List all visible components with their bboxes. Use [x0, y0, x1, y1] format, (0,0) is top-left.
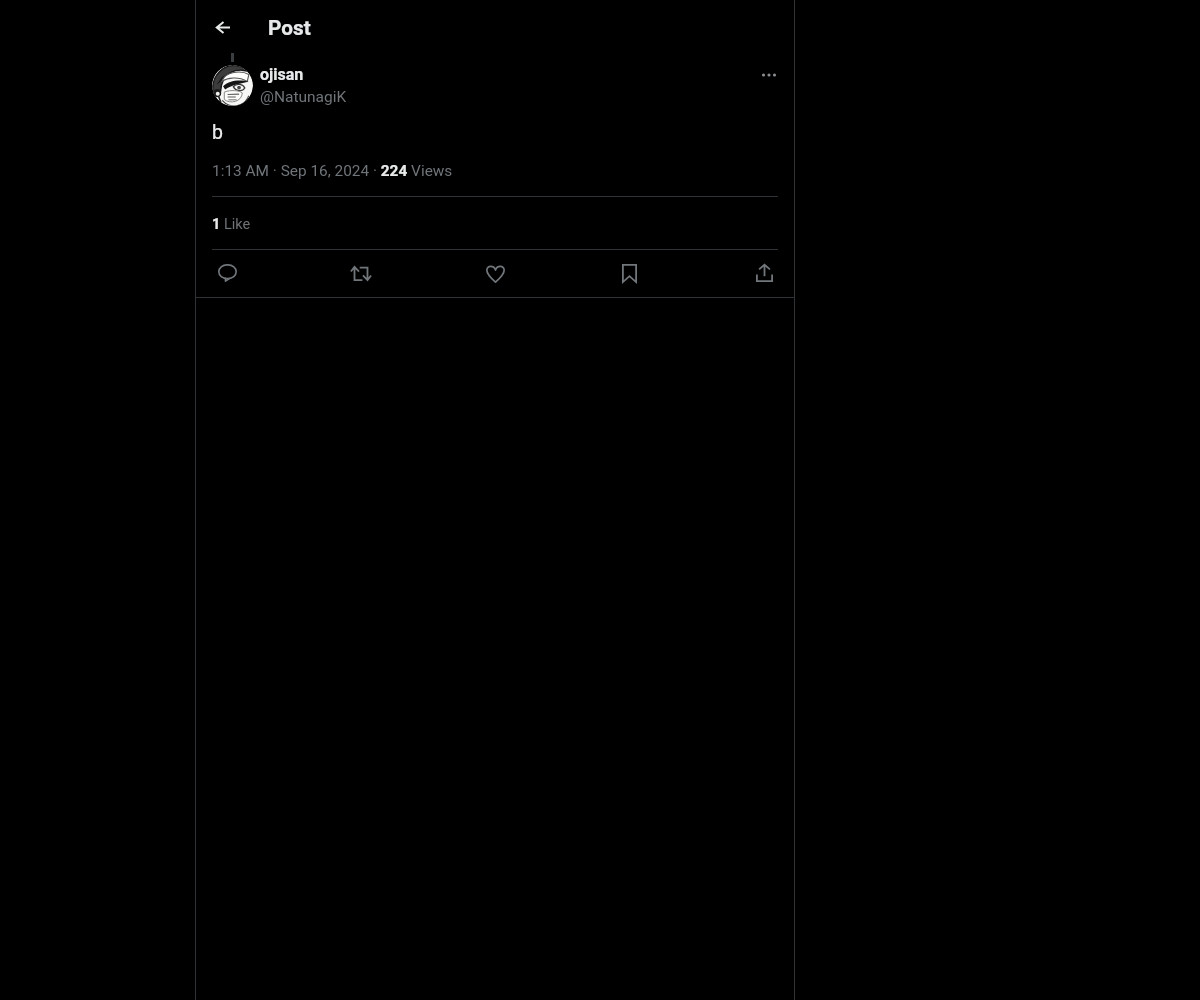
button[interactable]: Repost	[345, 257, 377, 289]
staticText: b	[212, 121, 223, 144]
staticText: 1 Like	[212, 216, 251, 233]
button[interactable]: Bookmark	[613, 257, 645, 289]
button[interactable]: Profile photo	[212, 65, 253, 106]
staticText: 1:13 AM · Sep 16, 2024 · 224 Views	[212, 162, 453, 180]
button[interactable]: Reply	[211, 257, 243, 289]
button[interactable]: Like	[479, 258, 511, 290]
button[interactable]: @NatunagiK	[260, 87, 350, 108]
button[interactable]: More options	[754, 60, 784, 90]
staticText: ojisan	[260, 65, 304, 84]
button[interactable]: Share	[748, 257, 780, 289]
button[interactable]: ojisan	[260, 64, 350, 84]
staticText: @NatunagiK	[260, 88, 347, 106]
staticText: Post	[268, 16, 311, 40]
button[interactable]: 1 Like	[212, 197, 778, 249]
button[interactable]: Back	[206, 10, 240, 44]
